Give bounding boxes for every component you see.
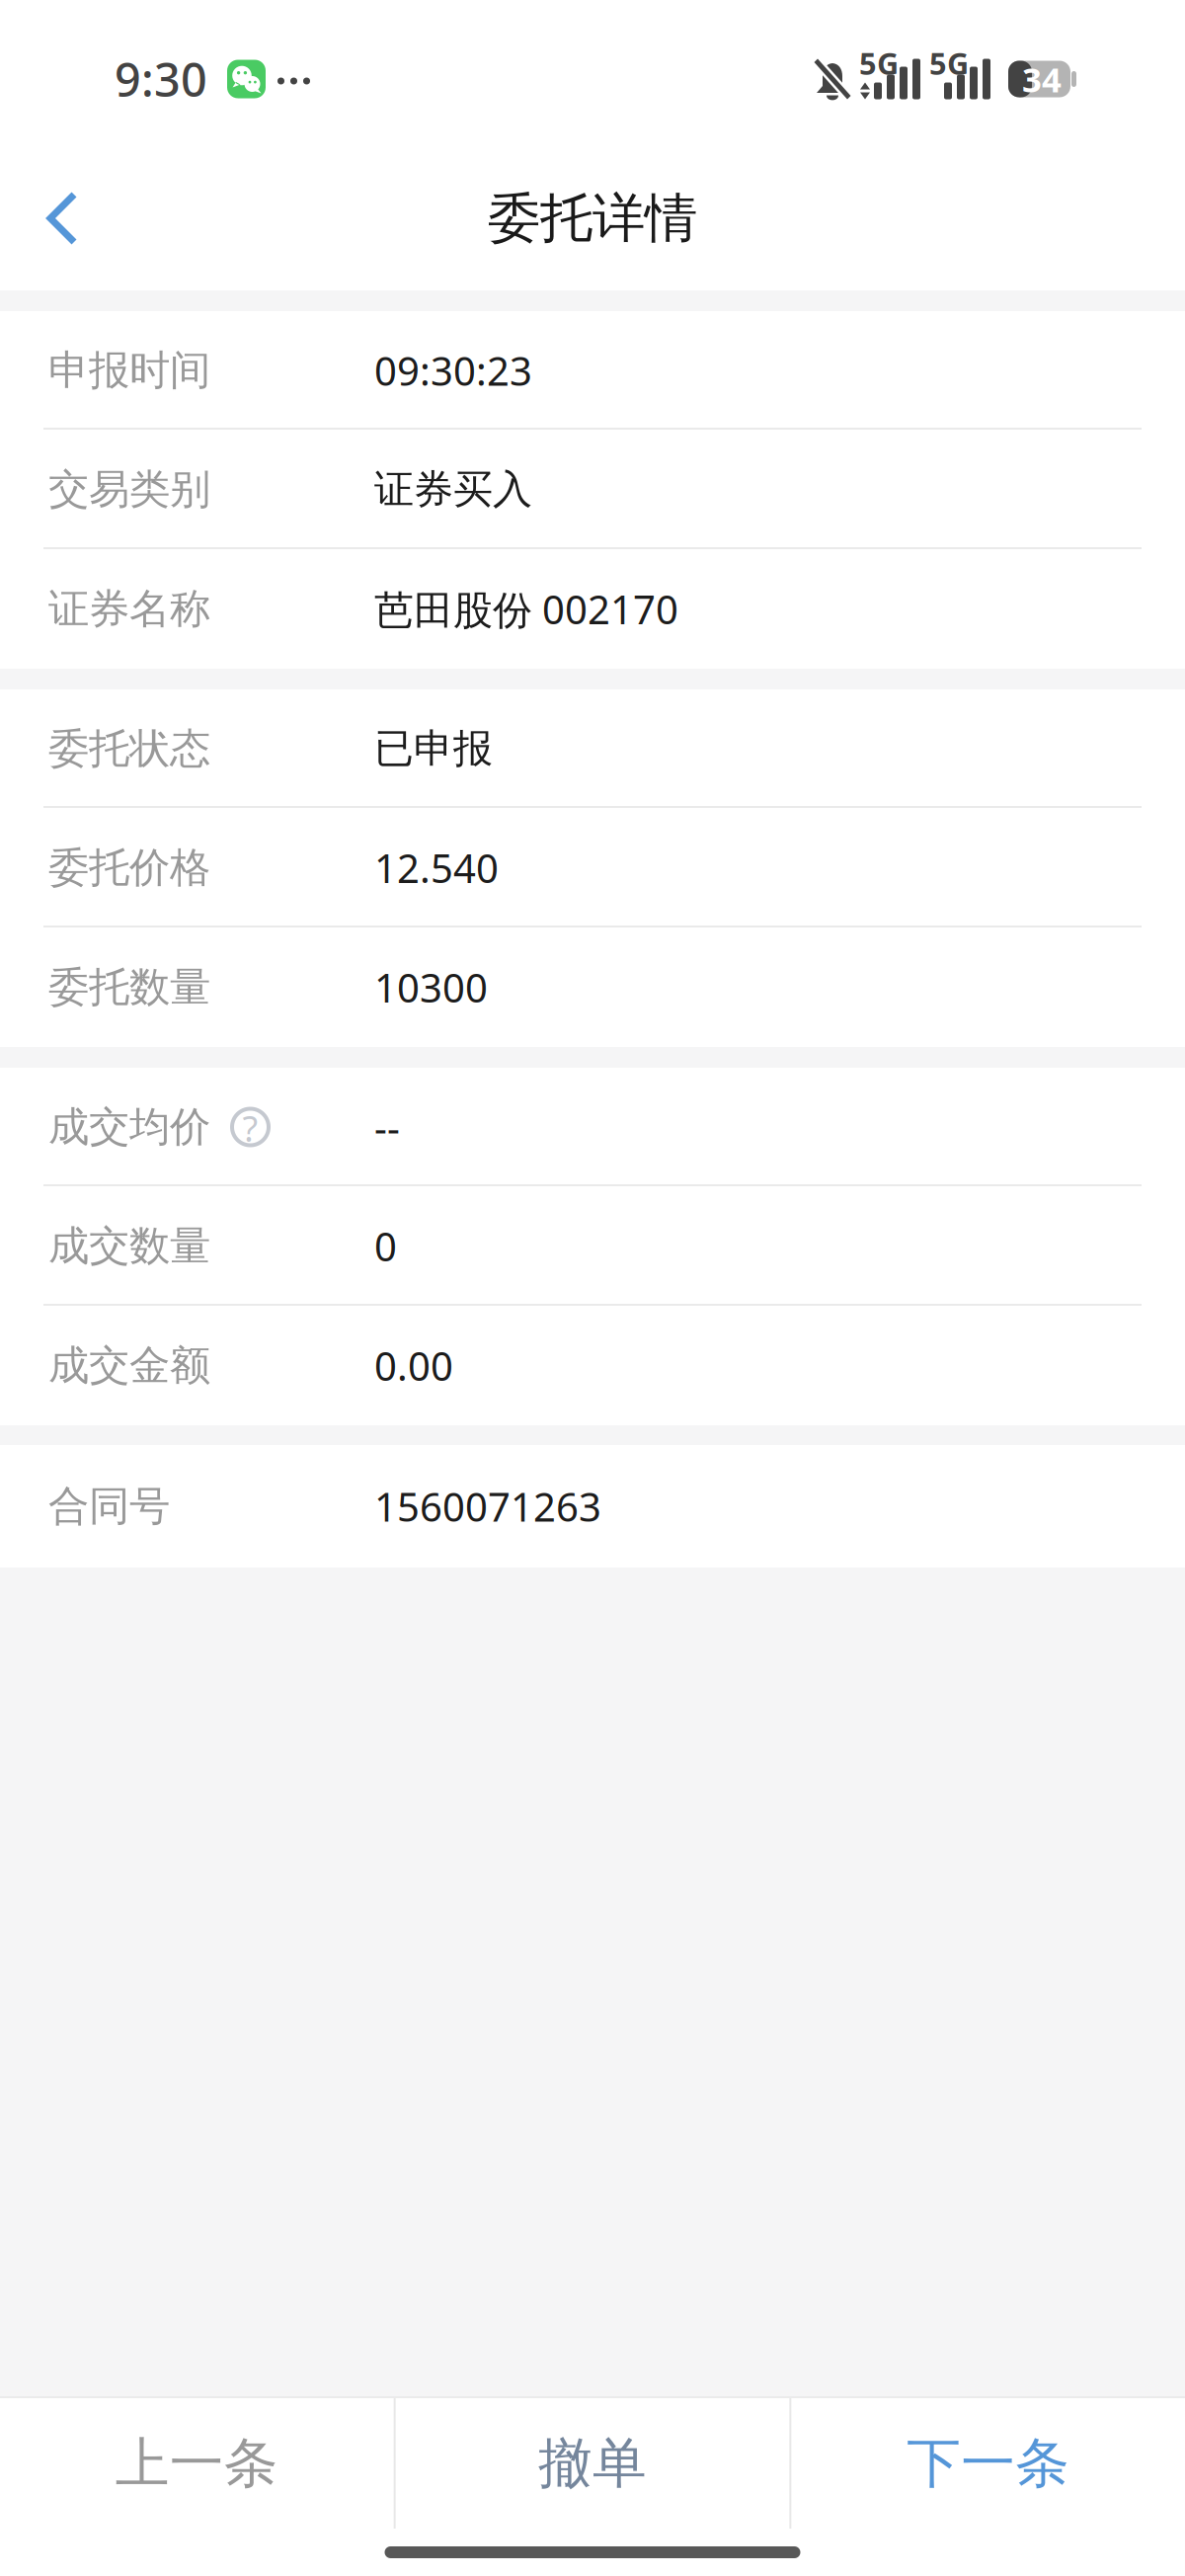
- staticText: 上一条: [115, 2430, 278, 2496]
- staticText: 5G: [929, 43, 969, 83]
- staticText: 交易类别: [48, 464, 210, 515]
- staticText: 10300: [374, 961, 488, 1013]
- staticText: 34: [1022, 56, 1062, 102]
- staticText: 成交数量: [48, 1221, 210, 1271]
- staticText: 成交均价: [48, 1102, 210, 1152]
- button[interactable]: About average fill price: [230, 1107, 271, 1147]
- staticText: 申报时间: [48, 345, 210, 395]
- staticText: ?: [242, 1104, 258, 1152]
- staticText: 下一条: [907, 2430, 1070, 2496]
- staticText: 0.00: [374, 1339, 453, 1392]
- staticText: 委托详情: [488, 186, 697, 251]
- staticText: 成交金额: [48, 1340, 210, 1391]
- staticText: 委托状态: [48, 724, 210, 774]
- staticText: 9:30: [115, 48, 207, 110]
- button[interactable]: Back: [0, 146, 115, 290]
- button[interactable]: 下一条: [791, 2398, 1185, 2529]
- staticText: 证券买入: [374, 465, 532, 514]
- staticText: 撤单: [538, 2430, 647, 2496]
- staticText: 委托价格: [48, 843, 210, 893]
- staticText: 12.540: [374, 841, 499, 894]
- button[interactable]: 上一条: [0, 2398, 394, 2529]
- staticText: 09:30:23: [374, 344, 532, 397]
- staticText: 1560071263: [374, 1480, 601, 1532]
- staticText: 5G: [859, 43, 899, 83]
- staticText: 芭田股份 002170: [374, 583, 678, 635]
- staticText: --: [374, 1101, 400, 1153]
- staticText: 已申报: [374, 724, 493, 773]
- staticText: 合同号: [48, 1481, 170, 1531]
- staticText: 委托数量: [48, 962, 210, 1012]
- staticText: 证券名称: [48, 584, 210, 634]
- button[interactable]: 撤单: [396, 2398, 789, 2529]
- staticText: 0: [374, 1220, 397, 1272]
